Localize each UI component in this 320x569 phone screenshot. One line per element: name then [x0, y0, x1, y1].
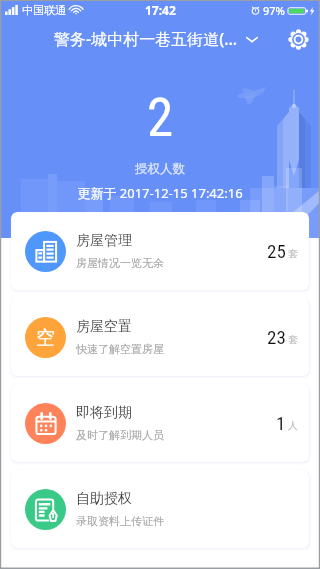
- staticText: 1: [276, 412, 286, 434]
- button[interactable]: 自助授权: [11, 470, 309, 548]
- staticText: 23: [267, 326, 286, 348]
- staticText: 97%: [263, 3, 285, 18]
- staticText: 录取资料上传证件: [76, 514, 164, 528]
- staticText: 套: [288, 247, 298, 260]
- staticText: 房屋情况一览无余: [76, 256, 164, 270]
- button[interactable]: 警务-城中村一巷五街道(...: [50, 22, 263, 56]
- staticText: 及时了解到期人员: [76, 428, 164, 442]
- staticText: 快速了解空置房屋: [76, 342, 164, 356]
- button[interactable]: 即将到期: [11, 384, 309, 462]
- staticText: 房屋空置: [76, 318, 132, 336]
- staticText: 授权人数: [0, 161, 320, 177]
- staticText: 套: [288, 333, 298, 346]
- staticText: 25: [267, 240, 286, 262]
- staticText: 2: [0, 87, 320, 149]
- staticText: 更新于 2017-12-15 17:42:16: [0, 184, 320, 202]
- staticText: 警务-城中村一巷五街道(...: [54, 28, 238, 50]
- staticText: 空: [36, 326, 55, 350]
- staticText: 中国联通: [22, 3, 66, 17]
- button[interactable]: 房屋管理: [11, 212, 309, 290]
- staticText: 房屋管理: [76, 232, 132, 250]
- button[interactable]: Settings: [282, 23, 314, 55]
- staticText: 人: [288, 419, 298, 432]
- staticText: 自助授权: [76, 490, 132, 508]
- button[interactable]: 空: [11, 298, 309, 376]
- staticText: 17:42: [145, 2, 176, 18]
- staticText: 即将到期: [76, 404, 132, 422]
